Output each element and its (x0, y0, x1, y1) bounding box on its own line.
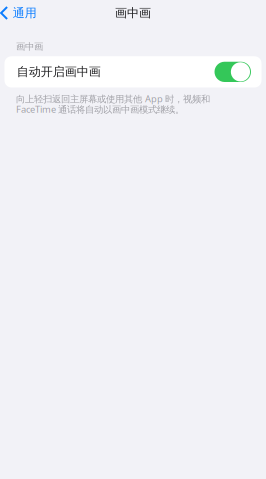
button[interactable]: 自动开启画中画 (214, 62, 251, 82)
button[interactable]: 通用 (0, 2, 37, 24)
button[interactable]: 自动开启画中画 (4, 56, 261, 87)
staticText: 画中画 (16, 41, 43, 52)
staticText: 向上轻扫返回主屏幕或使用其他 App 时，视频和 FaceTime 通话将自动以… (16, 92, 210, 115)
staticText: 自动开启画中画 (17, 64, 101, 79)
staticText: 画中画 (115, 6, 151, 20)
staticText: 通用 (13, 6, 37, 20)
